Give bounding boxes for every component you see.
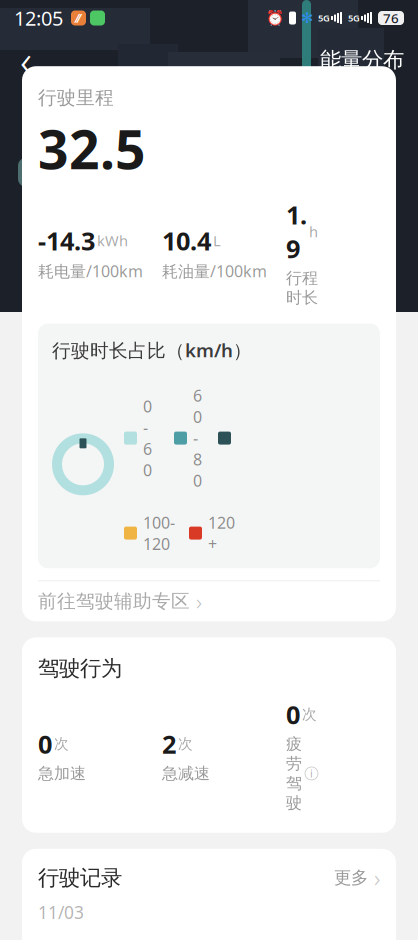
button[interactable]: 更多	[334, 863, 380, 893]
staticText: ‹	[20, 30, 32, 90]
staticText: 次	[302, 705, 317, 723]
staticText: 76	[383, 9, 399, 27]
staticText: 5G	[318, 12, 330, 24]
button[interactable]: 前往驾驶辅助专区	[38, 581, 380, 621]
staticText: 0	[38, 727, 52, 761]
staticText: 32.5	[38, 113, 146, 184]
staticText: 11/03	[38, 901, 84, 924]
staticText: 前往驾驶辅助专区	[38, 590, 190, 613]
staticText: 疲劳驾驶	[286, 734, 302, 813]
staticText: ›	[374, 862, 380, 894]
staticText: 能量分布	[320, 47, 404, 73]
staticText: 2	[162, 727, 176, 761]
staticText: h	[309, 222, 318, 241]
staticText: 10.4	[162, 224, 211, 257]
staticText: 周报	[97, 161, 135, 184]
staticText: 行驶时长占比（km/h）	[52, 337, 252, 362]
staticText: 耗电量/100km	[38, 260, 143, 282]
staticText: -14.3	[38, 224, 95, 257]
staticText: 行驶记录	[38, 865, 122, 891]
staticText: 次	[54, 735, 69, 753]
staticText: 更多	[334, 867, 368, 888]
staticText: 次	[178, 735, 193, 753]
staticText: ✻	[301, 10, 313, 26]
button[interactable]: Back	[0, 36, 52, 84]
staticText: kWh	[97, 231, 128, 250]
staticText: 5G	[348, 12, 360, 24]
staticText: ⏰	[266, 10, 284, 26]
staticText: 日报	[28, 161, 66, 184]
staticText: ›	[196, 586, 202, 616]
staticText: ⁄⁄	[76, 10, 80, 26]
staticText: i	[310, 766, 313, 781]
button[interactable]: 能量分布	[306, 36, 418, 84]
staticText: 0	[286, 697, 300, 731]
staticText: 急加速	[38, 764, 86, 783]
staticText: 1.9	[286, 198, 307, 265]
staticText: 耗油量/100km	[162, 260, 267, 282]
button[interactable]: 周报	[87, 158, 145, 187]
staticText: 100-120	[143, 512, 175, 554]
staticText: 行车报告	[22, 104, 150, 143]
staticText: 驾驶行为	[38, 655, 122, 681]
staticText: 行驶里程	[38, 86, 114, 109]
staticText: 0-60	[143, 396, 152, 481]
staticText: 急减速	[162, 764, 210, 783]
staticText: 行程时长	[286, 268, 318, 307]
staticText: 12:05	[14, 5, 63, 31]
staticText: 120+	[208, 512, 235, 554]
button[interactable]: 日报	[18, 158, 76, 187]
button[interactable]: 2025.11.03	[271, 157, 402, 187]
staticText: 60-80	[193, 385, 202, 491]
staticText: L	[213, 231, 221, 250]
